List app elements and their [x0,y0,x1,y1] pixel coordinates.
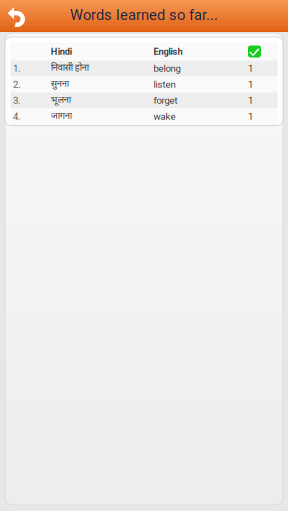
staticText: भूलना [51,94,71,107]
button[interactable]: Back [0,0,32,31]
staticText: 1 [248,63,253,74]
staticText: forget [153,95,177,106]
staticText: 2. [13,79,21,90]
staticText: English [153,46,182,57]
staticText: 1 [248,79,253,90]
staticText: 1 [248,111,253,122]
button[interactable]: 1. [10,60,277,76]
button[interactable]: Select all [248,45,277,57]
staticText: Hindi [51,46,72,57]
button[interactable]: 2. [10,76,277,92]
staticText: wake [153,111,175,122]
staticText: belong [153,63,180,74]
staticText: 3. [13,95,21,106]
staticText: 1. [13,63,21,74]
staticText: 1 [248,95,253,106]
staticText: सुनना [51,78,69,91]
button[interactable]: 4. [10,108,277,124]
staticText: जागना [51,110,72,123]
staticText: Words learned so far... [70,6,218,24]
staticText: निवासी होना [51,62,89,75]
staticText: 4. [13,111,21,122]
staticText: listen [153,79,175,90]
button[interactable]: 3. [10,92,277,108]
